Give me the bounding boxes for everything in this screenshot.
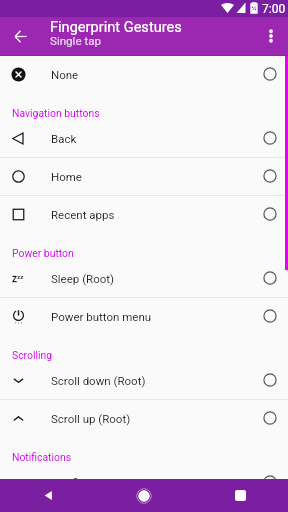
staticText: Scrolling xyxy=(12,349,53,361)
staticText: zᶻᶻ xyxy=(12,271,24,285)
button[interactable]: Home xyxy=(0,157,288,195)
staticText: Fingerprint Gestures xyxy=(50,18,182,35)
button[interactable]: None xyxy=(0,55,288,93)
button[interactable]: Recent apps xyxy=(0,195,288,233)
button[interactable]: Recent apps xyxy=(192,479,288,512)
staticText: Notification shade xyxy=(51,476,252,489)
staticText: Single tap xyxy=(50,34,102,48)
staticText: Recent apps xyxy=(51,208,252,221)
button[interactable]: Home xyxy=(96,479,192,512)
button[interactable]: Back xyxy=(0,479,96,512)
staticText: Notifications xyxy=(12,451,72,463)
button[interactable]: Navigate up xyxy=(8,24,33,49)
staticText: Power button xyxy=(12,247,74,259)
button[interactable]: Scroll up (Root) xyxy=(0,399,288,437)
staticText: None xyxy=(51,68,252,81)
staticText: Navigation buttons xyxy=(12,107,100,119)
staticText: Scroll down (Root) xyxy=(51,374,252,387)
button[interactable]: Back xyxy=(0,119,288,157)
staticText: Scroll up (Root) xyxy=(51,412,252,425)
button[interactable]: Notification shade xyxy=(0,463,288,501)
button[interactable]: Scroll down (Root) xyxy=(0,361,288,399)
button[interactable]: zᶻᶻ xyxy=(0,259,288,297)
staticText: Power button menu xyxy=(51,310,252,323)
staticText: Back xyxy=(51,132,252,145)
staticText: Home xyxy=(51,170,252,183)
button[interactable]: Power button menu xyxy=(0,297,288,335)
staticText: Sleep (Root) xyxy=(51,272,252,285)
staticText: 7:00 xyxy=(262,2,286,16)
button[interactable]: More options xyxy=(258,23,284,49)
